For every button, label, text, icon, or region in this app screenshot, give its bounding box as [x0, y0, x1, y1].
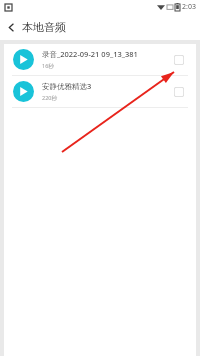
button[interactable]: 安静优雅精选3 [4, 76, 196, 107]
button[interactable]: Back [0, 14, 22, 40]
button[interactable]: Select 安静优雅精选3 [170, 83, 188, 101]
staticText: 本地音频 [22, 20, 66, 34]
staticText: 录音_2022-09-21 09_13_381 [42, 49, 138, 59]
staticText: 安静优雅精选3 [42, 81, 92, 91]
staticText: 220秒 [42, 94, 57, 102]
button[interactable]: 录音_2022-09-21 09_13_381 [4, 44, 196, 75]
button[interactable]: Select 录音_2022-09-21 09_13_381 [170, 51, 188, 69]
staticText: 2:03 [182, 2, 196, 12]
staticText: 16秒 [42, 62, 54, 70]
